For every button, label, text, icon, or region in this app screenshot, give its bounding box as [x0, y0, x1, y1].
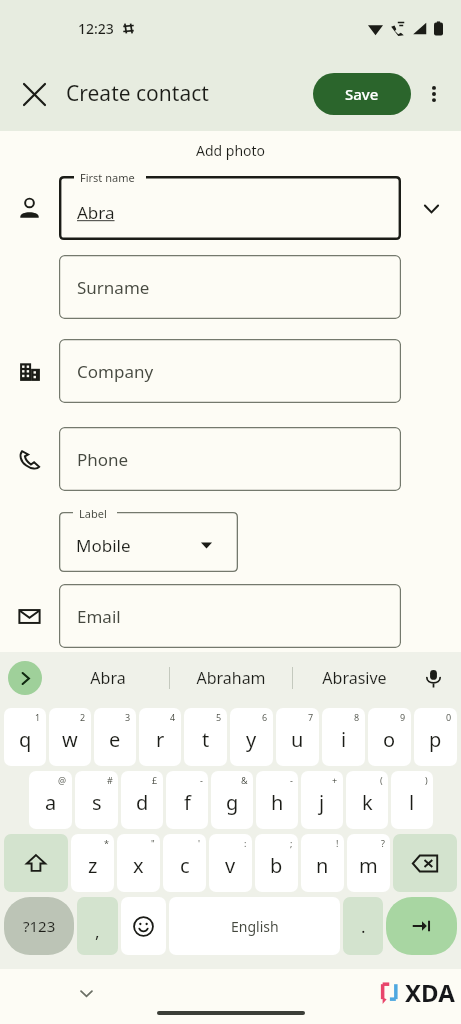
button[interactable]: Backspace: [393, 834, 457, 892]
button[interactable]: Expand name fields: [401, 178, 461, 238]
button[interactable]: e: [94, 708, 136, 766]
staticText: n: [316, 852, 329, 879]
button[interactable]: Voice input: [415, 660, 451, 696]
staticText: 7: [308, 711, 314, 723]
staticText: -: [200, 774, 203, 786]
button[interactable]: Emoji: [121, 897, 166, 955]
button[interactable]: Shift: [4, 834, 68, 892]
staticText: +: [332, 774, 338, 786]
button[interactable]: r: [139, 708, 181, 766]
button[interactable]: Abraham: [170, 652, 292, 704]
button[interactable]: v: [209, 834, 252, 892]
staticText: 4: [170, 711, 176, 723]
staticText: Abra: [77, 201, 115, 224]
button[interactable]: Surname: [59, 255, 401, 319]
button[interactable]: Abra: [46, 652, 169, 704]
button[interactable]: k: [346, 771, 388, 829]
staticText: Mobile: [76, 534, 131, 557]
button[interactable]: Period: [343, 897, 383, 955]
button[interactable]: g: [211, 771, 253, 829]
staticText: ): [425, 774, 428, 786]
staticText: y: [246, 726, 257, 753]
button[interactable]: d: [121, 771, 163, 829]
staticText: ,: [95, 920, 100, 943]
button[interactable]: a: [29, 771, 72, 829]
button[interactable]: Label: [59, 512, 238, 572]
staticText: 12:23: [78, 19, 114, 38]
staticText: d: [136, 789, 149, 816]
staticText: o: [383, 726, 396, 753]
button[interactable]: m: [347, 834, 390, 892]
staticText: l: [409, 789, 415, 816]
staticText: !: [336, 837, 339, 849]
staticText: 3: [125, 711, 131, 723]
button[interactable]: Comma: [77, 897, 118, 955]
staticText: Abra: [90, 667, 126, 689]
staticText: First name: [80, 170, 135, 185]
button[interactable]: p: [414, 708, 457, 766]
button[interactable]: t: [184, 708, 227, 766]
staticText: &: [241, 774, 248, 786]
staticText: ': [198, 837, 201, 849]
staticText: Abrasive: [322, 667, 387, 689]
button[interactable]: Add photo: [190, 135, 272, 166]
button[interactable]: u: [276, 708, 319, 766]
button[interactable]: Email: [59, 584, 401, 648]
staticText: z: [88, 852, 98, 879]
staticText: u: [291, 726, 304, 753]
staticText: XDA: [405, 976, 455, 1009]
staticText: *: [104, 837, 109, 849]
staticText: f: [184, 789, 191, 816]
staticText: c: [180, 852, 190, 879]
staticText: 9: [400, 711, 406, 723]
button[interactable]: b: [255, 834, 298, 892]
button[interactable]: Expand toolbar: [8, 661, 42, 695]
button[interactable]: h: [256, 771, 298, 829]
button[interactable]: y: [230, 708, 273, 766]
staticText: ;: [290, 837, 293, 849]
staticText: 1: [35, 711, 41, 723]
button[interactable]: o: [368, 708, 411, 766]
button[interactable]: w: [49, 708, 91, 766]
button[interactable]: Company: [59, 339, 401, 403]
staticText: @: [58, 774, 67, 786]
button[interactable]: c: [163, 834, 206, 892]
button[interactable]: Hide keyboard: [66, 973, 106, 1013]
button[interactable]: Close: [12, 72, 56, 116]
button[interactable]: s: [75, 771, 118, 829]
button[interactable]: n: [301, 834, 344, 892]
button[interactable]: z: [71, 834, 114, 892]
button[interactable]: j: [301, 771, 343, 829]
staticText: r: [156, 726, 165, 753]
staticText: Email: [77, 605, 121, 628]
button[interactable]: First name: [59, 176, 401, 240]
staticText: 8: [354, 711, 360, 723]
staticText: Abraham: [196, 667, 266, 689]
staticText: 2: [80, 711, 86, 723]
staticText: .: [361, 915, 366, 938]
staticText: m: [359, 852, 378, 879]
button[interactable]: ?123: [4, 897, 74, 955]
staticText: j: [319, 789, 325, 816]
button[interactable]: Phone: [59, 427, 401, 491]
button[interactable]: q: [4, 708, 46, 766]
button[interactable]: Save: [313, 73, 411, 115]
button[interactable]: x: [117, 834, 160, 892]
staticText: g: [226, 789, 239, 816]
staticText: s: [92, 789, 102, 816]
button[interactable]: English: [169, 897, 340, 955]
button[interactable]: f: [166, 771, 208, 829]
staticText: h: [271, 789, 284, 816]
staticText: Company: [77, 360, 154, 383]
staticText: v: [225, 852, 236, 879]
staticText: a: [45, 789, 57, 816]
button[interactable]: i: [322, 708, 365, 766]
staticText: x: [133, 852, 144, 879]
button[interactable]: Next field: [386, 897, 457, 955]
staticText: e: [109, 726, 121, 753]
staticText: Surname: [77, 276, 150, 299]
button[interactable]: l: [391, 771, 433, 829]
button[interactable]: More options: [413, 73, 455, 115]
staticText: Create contact: [66, 79, 209, 108]
button[interactable]: Abrasive: [293, 652, 415, 704]
